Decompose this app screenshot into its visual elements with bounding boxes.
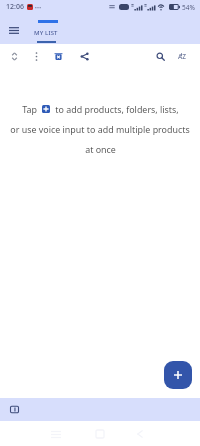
button[interactable]: Navigation menu xyxy=(7,24,20,37)
button[interactable]: MY LIST xyxy=(33,27,59,44)
button[interactable]: Add item xyxy=(164,361,192,389)
staticText: at once xyxy=(85,143,116,155)
staticText: Tap xyxy=(22,103,37,115)
button[interactable]: Keyboard switcher xyxy=(9,404,20,415)
button[interactable]: More options xyxy=(26,46,46,66)
button[interactable]: Search xyxy=(150,46,170,66)
staticText: MY LIST xyxy=(34,29,58,37)
staticText: to add products, folders, lists, xyxy=(55,103,179,115)
staticText: AZ xyxy=(178,52,186,61)
staticText: 12:06 xyxy=(6,2,24,12)
button[interactable]: Sort xyxy=(4,46,24,66)
button[interactable]: Sort alphabetically xyxy=(171,46,191,66)
staticText: or use voice input to add multiple produ… xyxy=(10,123,190,135)
button[interactable]: Delete xyxy=(48,46,68,66)
button[interactable]: Share xyxy=(74,46,94,66)
staticText: 54% xyxy=(182,3,195,12)
